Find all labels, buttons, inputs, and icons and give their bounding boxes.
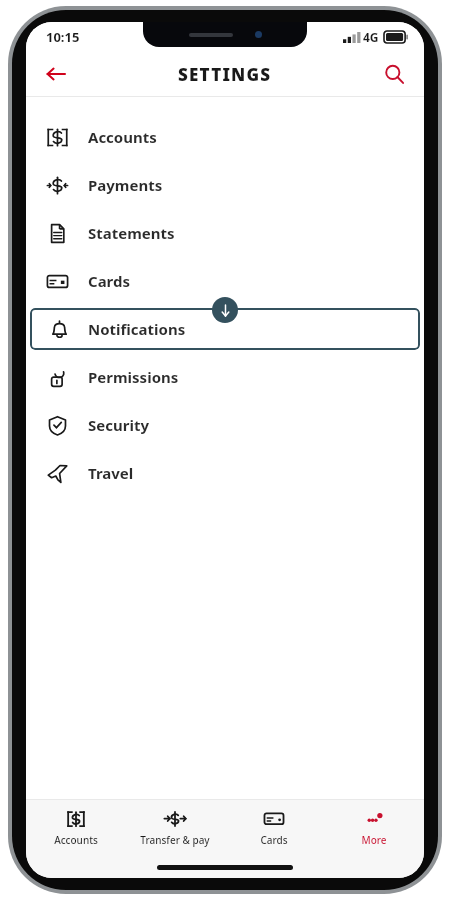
button[interactable]: Back xyxy=(34,52,78,96)
staticText: Cards xyxy=(260,833,288,847)
button[interactable]: Accounts xyxy=(26,800,125,856)
button[interactable]: Scroll down xyxy=(212,297,238,323)
staticText: Statements xyxy=(88,223,175,243)
staticText: Payments xyxy=(88,175,163,195)
button[interactable]: Statements xyxy=(26,209,424,257)
button[interactable]: Transfer & pay xyxy=(125,800,224,856)
button[interactable]: Search xyxy=(372,52,416,96)
staticText: Cards xyxy=(88,271,131,291)
staticText: Accounts xyxy=(88,127,157,147)
staticText: Transfer & pay xyxy=(140,833,210,847)
staticText: 4G xyxy=(363,29,379,45)
staticText: 10:15 xyxy=(46,28,80,46)
staticText: SETTINGS xyxy=(178,63,272,86)
button[interactable]: Payments xyxy=(26,161,424,209)
button[interactable]: Security xyxy=(26,401,424,449)
button[interactable]: Cards xyxy=(26,257,424,305)
staticText: Security xyxy=(88,415,149,435)
staticText: More xyxy=(361,833,387,847)
button[interactable]: Accounts xyxy=(26,113,424,161)
button[interactable]: Notifications xyxy=(30,308,420,350)
staticText: Notifications xyxy=(88,319,186,339)
staticText: Travel xyxy=(88,463,134,483)
button[interactable]: Travel xyxy=(26,449,424,497)
staticText: Permissions xyxy=(88,367,179,387)
button[interactable]: More xyxy=(324,800,424,856)
button[interactable]: Permissions xyxy=(26,353,424,401)
staticText: Accounts xyxy=(54,833,98,847)
button[interactable]: Cards xyxy=(224,800,324,856)
